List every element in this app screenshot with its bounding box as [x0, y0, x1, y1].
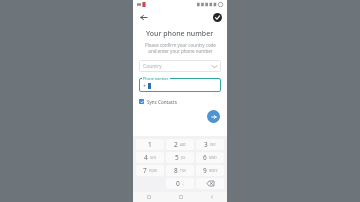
button[interactable]: 7: [136, 165, 164, 176]
staticText: JKL: [181, 156, 186, 160]
staticText: Sync Contacts: [147, 99, 177, 105]
button[interactable]: Back: [196, 192, 227, 202]
staticText: Phone number: [143, 76, 169, 81]
staticText: DEF: [210, 143, 216, 147]
staticText: PQRS: [149, 169, 158, 173]
button[interactable]: 4: [136, 152, 164, 163]
staticText: +: [143, 82, 147, 89]
button[interactable]: 6: [196, 152, 224, 163]
button[interactable]: Next: [207, 110, 220, 123]
staticText: Country: [143, 63, 162, 70]
staticText: GHI: [150, 156, 156, 160]
staticText: Your phone number: [146, 29, 214, 39]
staticText: 8: [174, 166, 178, 175]
staticText: 6: [203, 153, 207, 162]
staticText: 2: [174, 140, 178, 149]
button[interactable]: 1: [136, 139, 164, 150]
staticText: 4: [144, 153, 148, 162]
staticText: WXYZ: [209, 169, 218, 173]
staticText: 7: [143, 166, 147, 175]
button[interactable]: 0: [166, 178, 194, 189]
staticText: 5: [175, 153, 179, 162]
button[interactable]: Sync Contacts: [139, 97, 221, 106]
staticText: 1: [148, 140, 152, 149]
button[interactable]: 8: [166, 165, 194, 176]
staticText: 3: [204, 140, 208, 149]
button[interactable]: Verified: [212, 12, 223, 23]
button[interactable]: 3: [196, 139, 224, 150]
button[interactable]: Home: [165, 192, 196, 202]
staticText: 0: [176, 179, 180, 188]
button[interactable]: 2: [166, 139, 194, 150]
staticText: ABC: [180, 143, 187, 147]
button[interactable]: Recents: [133, 192, 165, 202]
button[interactable]: 9: [196, 165, 224, 176]
staticText: 9: [203, 166, 207, 175]
staticText: MNO: [209, 156, 217, 160]
button[interactable]: [139, 78, 221, 92]
staticText: +: [182, 182, 184, 186]
button[interactable]: Country: [139, 60, 221, 72]
staticText: Please confirm your country code and ent…: [145, 42, 216, 54]
button[interactable]: Back: [137, 11, 149, 23]
staticText: TUV: [180, 169, 187, 173]
button[interactable]: Backspace: [196, 178, 224, 189]
button[interactable]: 5: [166, 152, 194, 163]
